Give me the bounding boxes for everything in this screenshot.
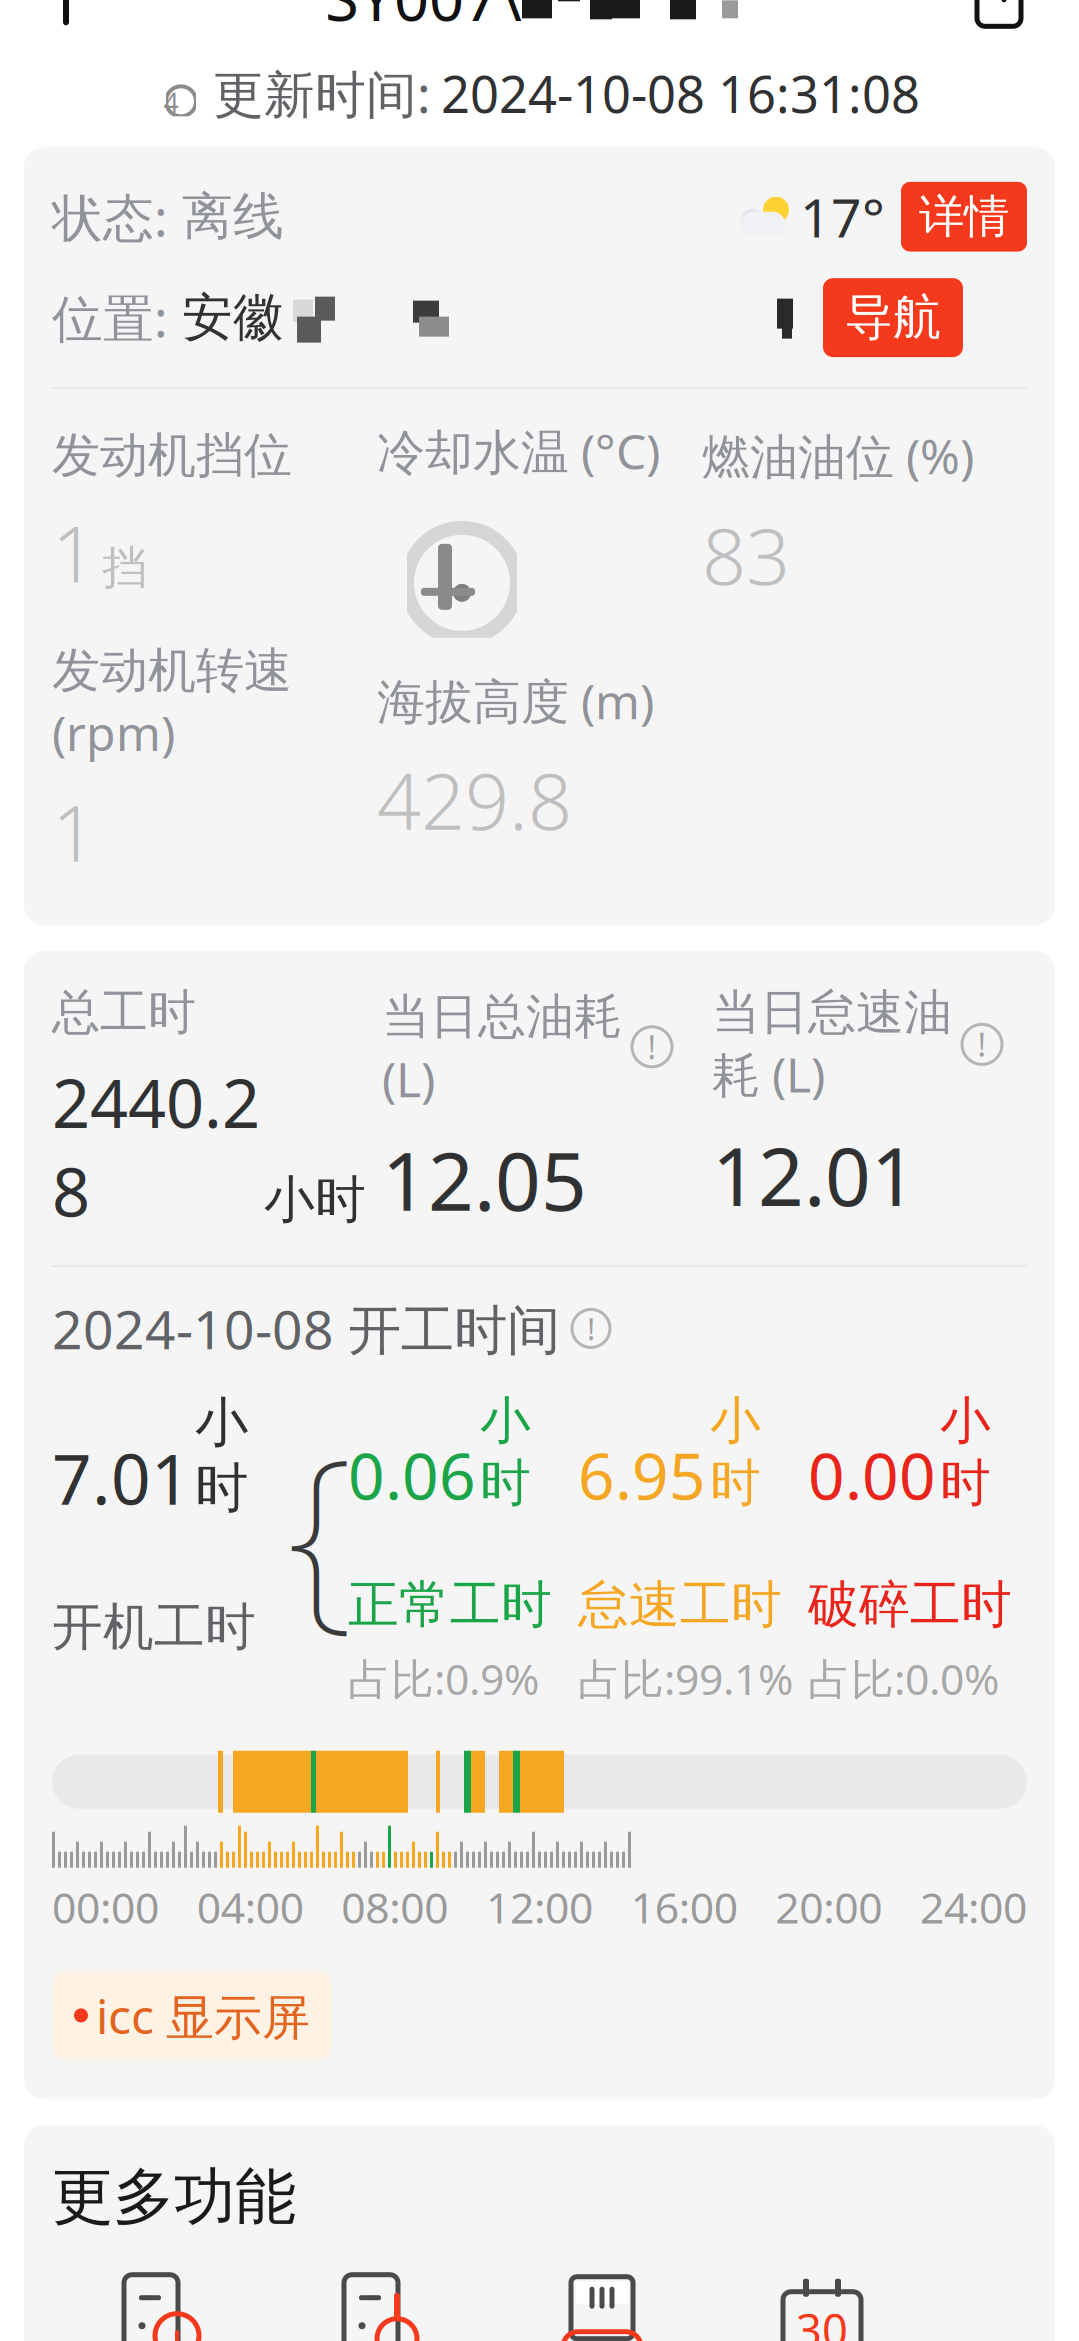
staticText: 燃油油位 (%) <box>702 424 974 487</box>
staticText: 发动机转速 (rpm) <box>52 637 292 764</box>
staticText: ! <box>647 1025 656 1068</box>
staticText: 离线 <box>182 186 284 248</box>
staticText: 冷却水温 (°C) <box>377 419 660 483</box>
staticText: 总工时 <box>52 983 196 1042</box>
staticText: 30 <box>796 2300 848 2341</box>
staticText: 00:00 <box>52 1879 159 1935</box>
staticText: 4 <box>163 85 178 120</box>
button[interactable]: 分享 <box>971 0 1027 26</box>
staticText: 1 <box>52 780 96 883</box>
staticText: 08:00 <box>341 1879 448 1935</box>
button[interactable]: 工时报表 <box>52 2271 272 2341</box>
staticText: 2440.28 <box>52 1058 260 1235</box>
staticText: 小时 <box>195 1390 248 1521</box>
staticText: 12:00 <box>486 1879 593 1935</box>
staticText: 1 <box>52 501 96 604</box>
staticText: 16:00 <box>631 1879 738 1935</box>
staticText: 小时 <box>710 1390 761 1514</box>
staticText: SY007\ <box>325 0 522 38</box>
staticText: 2024-10-08 16:31:08 <box>441 60 920 127</box>
staticText: 0.06 <box>348 1432 476 1517</box>
staticText: 状态: <box>52 183 168 250</box>
button[interactable]: 导航 <box>823 278 963 357</box>
staticText: 占比:99.1% <box>578 1650 793 1707</box>
staticText: 导航 <box>845 288 941 347</box>
staticText: ! <box>977 1023 986 1066</box>
button[interactable]: 详情 <box>901 182 1027 252</box>
button[interactable]: 油耗报表 <box>272 2271 492 2341</box>
staticText: 详情 <box>919 189 1009 245</box>
staticText: 83 <box>702 503 790 606</box>
staticText: 小时 <box>940 1390 991 1514</box>
button[interactable]: icc 显示屏 <box>52 1971 332 2059</box>
staticText: 占比:0.0% <box>808 1650 999 1707</box>
staticText: 占比:0.9% <box>348 1650 539 1707</box>
staticText: 小时 <box>264 1169 366 1231</box>
staticText: 小时 <box>480 1390 531 1514</box>
staticText: icc 显示屏 <box>96 1983 310 2047</box>
button[interactable]: 返回 <box>52 0 92 25</box>
staticText: 429.8 <box>377 748 572 851</box>
staticText: 挡 <box>102 540 147 596</box>
staticText: { <box>286 1394 353 1659</box>
staticText: 安徽 <box>182 286 284 349</box>
staticText: 更多功能 <box>52 2159 296 2235</box>
button[interactable]: 30 <box>712 2271 932 2341</box>
staticText: 04:00 <box>197 1879 304 1935</box>
staticText: 24:00 <box>920 1879 1027 1935</box>
staticText: 6.95 <box>578 1432 706 1517</box>
staticText: 20:00 <box>775 1879 882 1935</box>
staticText: 正常工时 <box>348 1574 552 1636</box>
staticText: 12.05 <box>382 1126 587 1233</box>
staticText: 0.00 <box>808 1432 936 1517</box>
staticText: 当日总油耗 (L) <box>382 983 622 1110</box>
staticText: 当日怠速油耗 (L) <box>712 983 952 1106</box>
staticText: 破碎工时 <box>808 1574 1012 1636</box>
staticText: ! <box>587 1308 595 1349</box>
staticText: 开机工时 <box>52 1596 256 1658</box>
staticText: 位置: <box>52 284 168 351</box>
staticText: 17° <box>800 181 885 252</box>
staticText: 发动机挡位 <box>52 426 292 485</box>
staticText: 12.01 <box>712 1122 917 1228</box>
staticText: 更新时间: <box>213 60 431 127</box>
button[interactable]: 附近服务 <box>492 2271 712 2341</box>
staticText: 怠速工时 <box>578 1574 782 1636</box>
staticText: 7.01 <box>52 1432 191 1524</box>
staticText: 海拔高度 (m) <box>377 669 654 732</box>
staticText: 2024-10-08 开工时间 <box>52 1293 560 1364</box>
